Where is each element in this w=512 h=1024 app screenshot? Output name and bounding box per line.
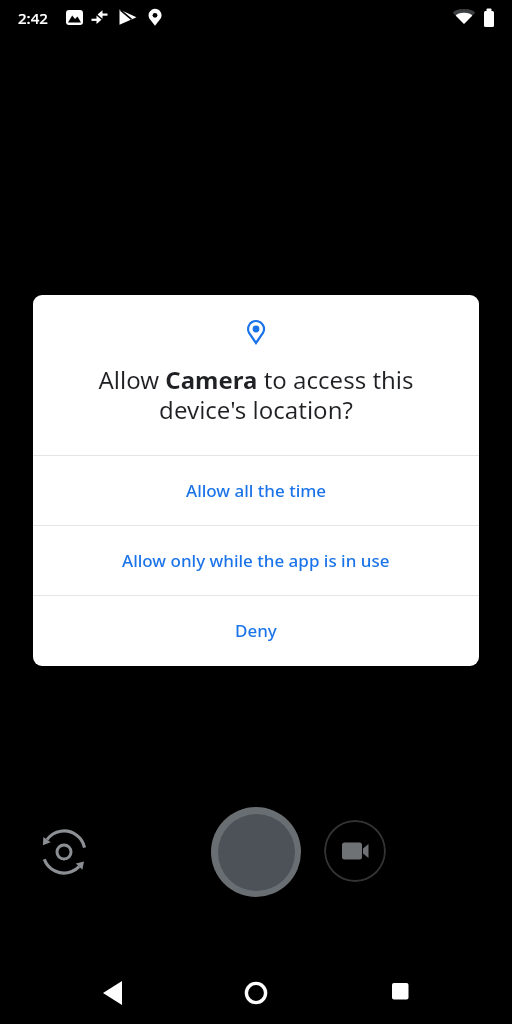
staticText: Allow only while the app is in use [122,549,390,572]
button[interactable] [211,807,301,897]
button[interactable] [324,820,386,882]
button[interactable] [236,973,276,1013]
button[interactable] [380,973,420,1013]
staticText: Deny [235,619,277,642]
staticText: 2:42 [18,8,48,28]
button[interactable]: Allow only while the app is in use [33,526,479,595]
button[interactable] [93,973,133,1013]
staticText: Allow all the time [186,479,327,502]
button[interactable]: Allow all the time [33,456,479,525]
button[interactable]: Deny [33,596,479,665]
button[interactable] [34,822,94,882]
staticText: Allow Camera to access this device's loc… [33,363,479,426]
